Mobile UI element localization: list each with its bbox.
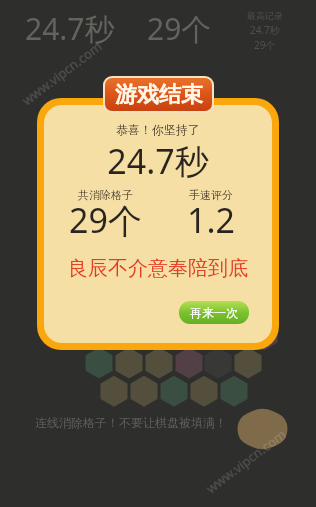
staticText: www.vipcn.com xyxy=(202,425,290,497)
staticText: 24.7秒 xyxy=(250,23,280,37)
staticText: 手速评分 xyxy=(189,188,233,202)
staticText: 共消除格子 xyxy=(78,188,133,202)
staticText: 1.2 xyxy=(187,197,236,243)
staticText: 29个 xyxy=(69,197,142,243)
button[interactable]: 再来一次 xyxy=(179,301,249,324)
staticText: 最高记录 xyxy=(247,10,283,21)
staticText: 24.7秒 xyxy=(25,8,115,49)
staticText: 29个 xyxy=(254,38,276,52)
staticText: www.vipcn.com xyxy=(18,37,106,109)
staticText: 再来一次 xyxy=(190,305,238,320)
staticText: 游戏结束 xyxy=(115,81,203,109)
staticText: 29个 xyxy=(147,8,212,49)
staticText: 良辰不介意奉陪到底 xyxy=(44,256,272,281)
staticText: 24.7秒 xyxy=(44,138,272,184)
staticText: 恭喜！你坚持了 xyxy=(44,122,272,137)
staticText: 连线消除格子！不要让棋盘被填满！ xyxy=(35,415,227,430)
